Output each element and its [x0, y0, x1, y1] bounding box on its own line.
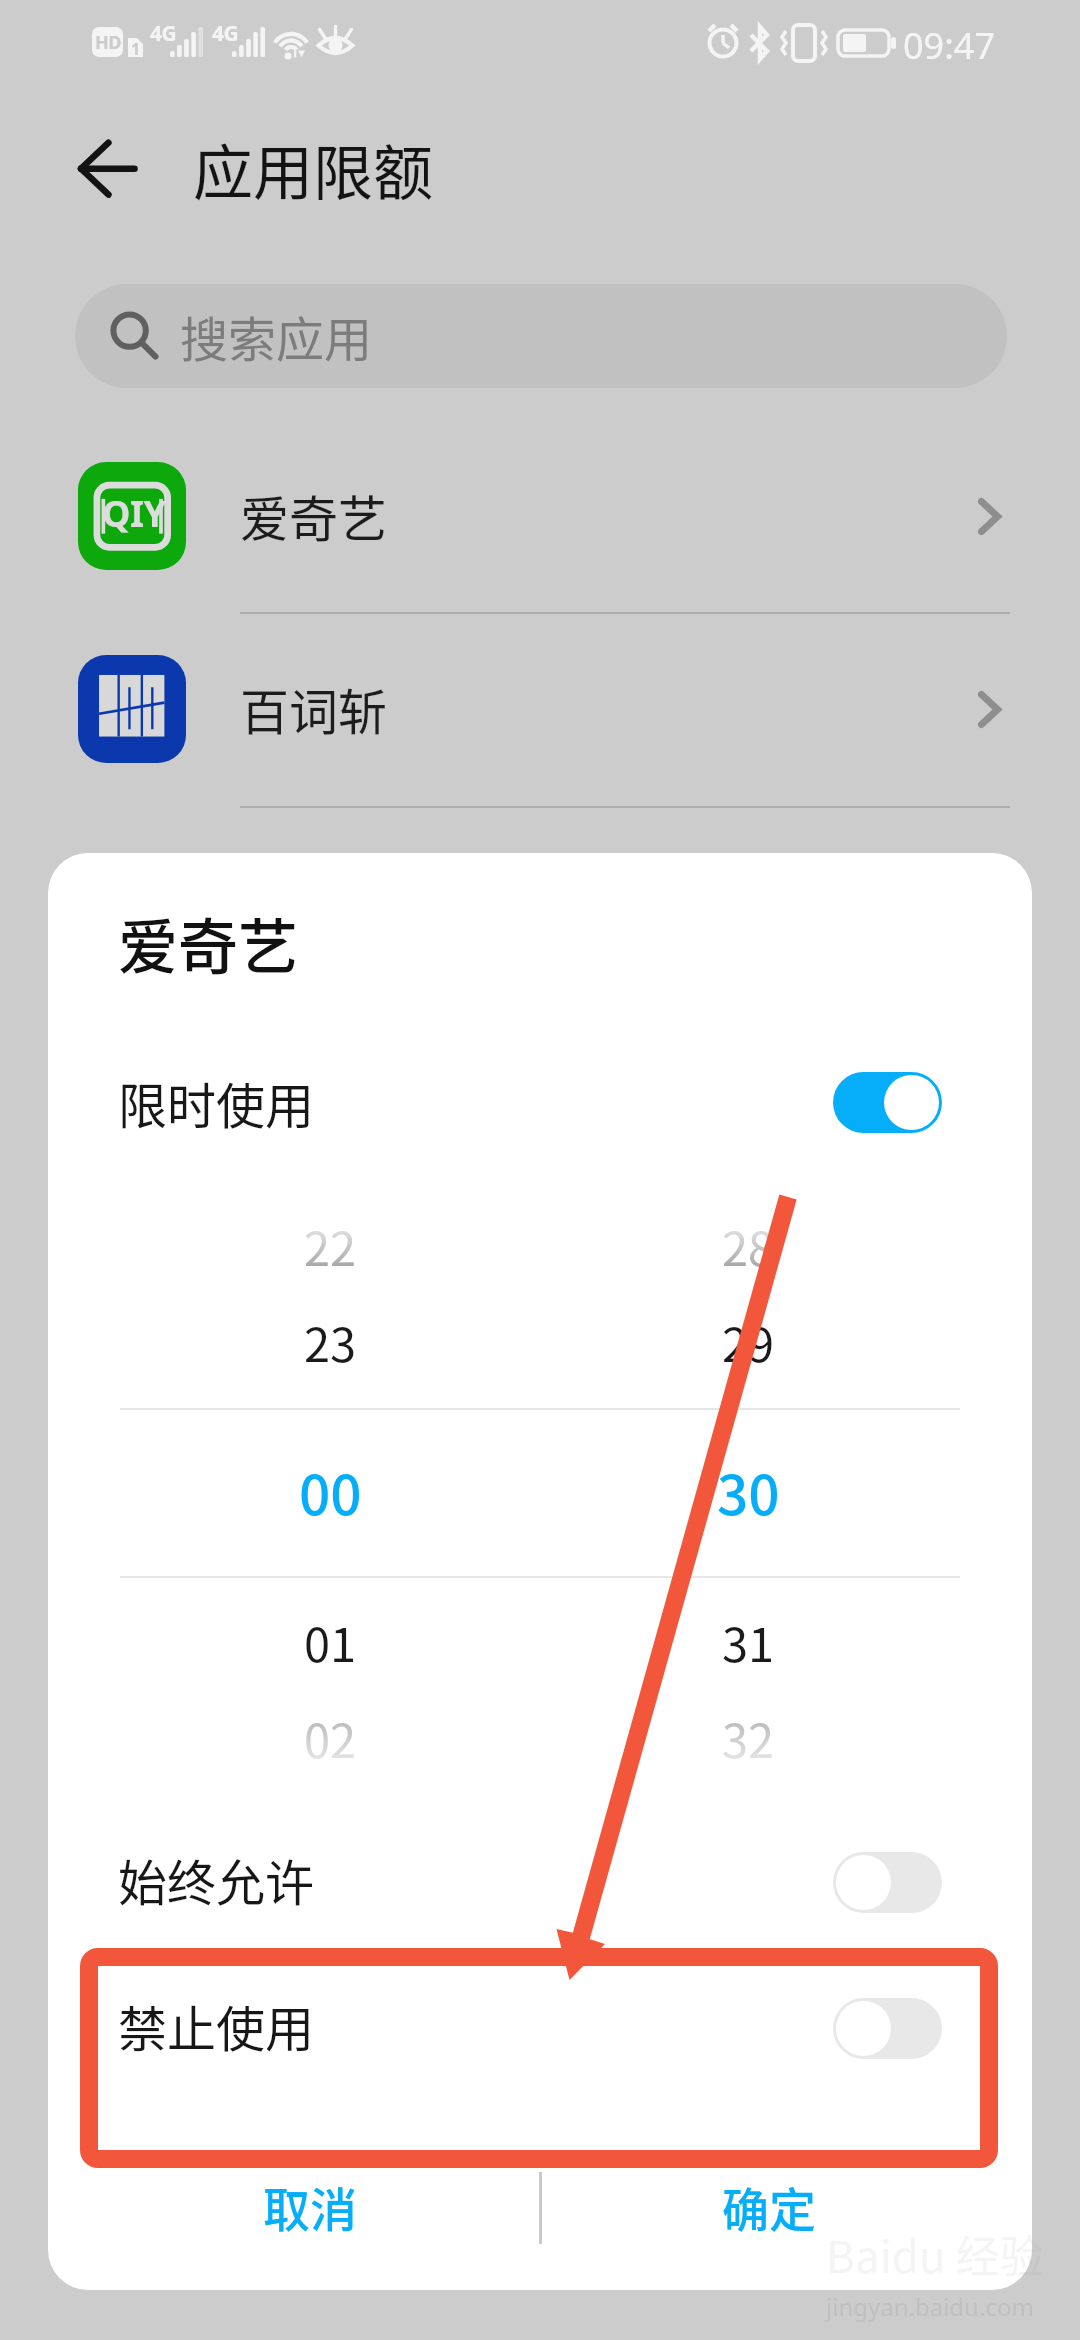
button[interactable]: 禁止使用 off	[833, 1998, 942, 2059]
button[interactable]: 限时使用	[48, 1032, 1032, 1172]
button[interactable]: Back	[60, 120, 156, 216]
button[interactable]: 始终允许 off	[833, 1852, 942, 1913]
staticText: 爱奇艺	[240, 480, 388, 551]
staticText: 09:47	[903, 21, 996, 70]
button[interactable]: 确定	[542, 2150, 1032, 2262]
staticText: 取消	[263, 2172, 357, 2240]
button[interactable]: QIY	[0, 427, 1080, 605]
staticText: 31	[722, 1607, 775, 1675]
staticText: 爱奇艺	[118, 899, 298, 986]
staticText: 4G	[212, 19, 239, 48]
staticText: 4G	[150, 19, 177, 48]
staticText: QIY	[102, 489, 166, 538]
button[interactable]: 限时使用 on	[833, 1072, 942, 1133]
staticText: 01	[304, 1607, 357, 1675]
button[interactable]: 取消	[48, 2150, 539, 2262]
staticText: 29	[722, 1307, 775, 1375]
staticText: 22	[304, 1211, 357, 1279]
staticText: 32	[722, 1703, 775, 1771]
staticText: Baidu 经验	[826, 2222, 1044, 2286]
staticText: jingyan.baidu.com	[826, 2290, 1034, 2323]
staticText: 搜索应用	[180, 301, 373, 371]
staticText: 30	[717, 1451, 780, 1531]
button[interactable]: 禁止使用	[48, 1955, 1032, 2095]
staticText: 02	[304, 1703, 357, 1771]
staticText: 00	[299, 1451, 362, 1531]
staticText: 禁止使用	[118, 1990, 315, 2061]
staticText: 百词斩	[240, 673, 388, 744]
button[interactable]: 始终允许	[48, 1809, 1032, 1949]
staticText: 确定	[722, 2172, 816, 2240]
staticText: 23	[304, 1307, 357, 1375]
staticText: HD	[95, 30, 121, 55]
button[interactable]: 搜索应用	[75, 284, 1007, 388]
staticText: 始终允许	[118, 1844, 315, 1915]
button[interactable]: 百词斩	[0, 620, 1080, 798]
staticText: 28	[722, 1211, 775, 1279]
staticText: 应用限额	[193, 125, 433, 212]
staticText: 1	[131, 38, 141, 57]
staticText: 限时使用	[118, 1067, 315, 1138]
